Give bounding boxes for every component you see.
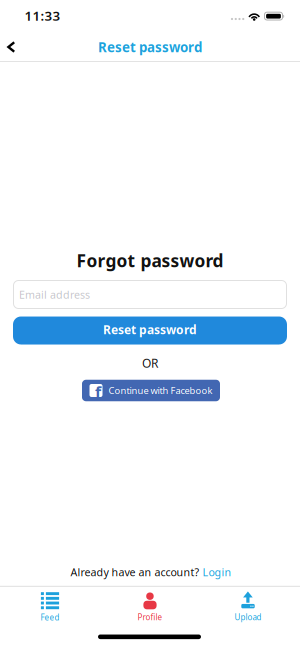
button[interactable]: Profile (105, 585, 195, 630)
button[interactable]: f (82, 380, 220, 401)
staticText: Upload (234, 612, 261, 622)
button[interactable]: Reset password (13, 316, 287, 344)
staticText: Profile (137, 612, 162, 622)
button[interactable]: Back (1, 32, 31, 62)
staticText: Email address (19, 287, 90, 302)
staticText: Reset password (103, 321, 197, 337)
staticText: Continue with Facebook (108, 384, 212, 397)
button[interactable]: Login (202, 565, 231, 579)
staticText: f (95, 381, 101, 403)
staticText: 11:33 (24, 7, 60, 24)
staticText: Feed (40, 612, 59, 623)
staticText: OR (142, 355, 158, 371)
button[interactable]: Upload (203, 584, 293, 629)
button[interactable]: Feed (5, 585, 95, 630)
staticText: Login (202, 565, 231, 579)
staticText: Forgot password (76, 249, 223, 272)
staticText: Already have an account? (70, 565, 199, 579)
staticText: Reset password (98, 38, 202, 56)
